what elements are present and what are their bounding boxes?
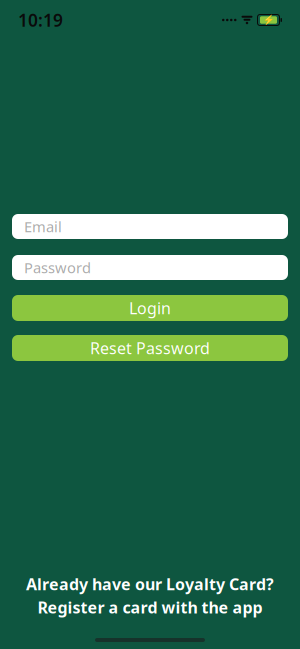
- button[interactable]: Already have our Loyalty Card?: [12, 569, 288, 622]
- staticText: Already have our Loyalty Card?: [26, 573, 274, 595]
- staticText: Login: [129, 297, 171, 319]
- button[interactable]: Reset Password: [12, 335, 288, 361]
- staticText: Reset Password: [90, 337, 210, 359]
- staticText: 10:19: [18, 8, 63, 31]
- staticText: Register a card with the app: [37, 597, 262, 618]
- staticText: Password: [24, 258, 91, 277]
- staticText: Email: [24, 217, 62, 236]
- button[interactable]: Login: [12, 295, 288, 321]
- staticText: ⚡: [262, 15, 274, 25]
